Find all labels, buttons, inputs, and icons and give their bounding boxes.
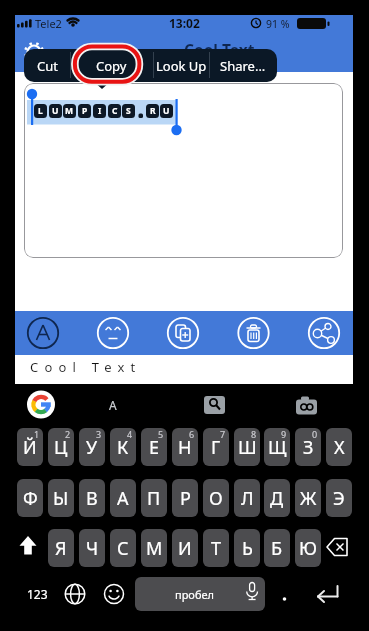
- staticText: Л: [241, 486, 254, 511]
- button[interactable]: [15, 529, 45, 566]
- staticText: С: [117, 536, 129, 561]
- staticText: R: [150, 105, 156, 117]
- staticText: 8: [251, 428, 257, 440]
- staticText: Look Up: [156, 57, 207, 75]
- staticText: U: [52, 105, 59, 117]
- button[interactable]: О: [203, 479, 229, 517]
- staticText: Т: [211, 536, 222, 561]
- staticText: О: [209, 486, 223, 511]
- button[interactable]: [24, 83, 343, 258]
- button[interactable]: Cut: [24, 49, 70, 82]
- staticText: А: [117, 486, 129, 511]
- staticText: 4: [127, 428, 133, 440]
- button[interactable]: [308, 577, 348, 611]
- staticText: Ж: [300, 486, 317, 511]
- button[interactable]: Р: [172, 479, 198, 517]
- staticText: Share...: [220, 57, 266, 75]
- staticText: Cool Text: [184, 39, 255, 60]
- button[interactable]: Ю: [295, 529, 321, 567]
- staticText: М: [146, 536, 163, 561]
- staticText: П: [147, 486, 161, 511]
- button[interactable]: Н: [172, 428, 198, 466]
- staticText: Г: [211, 435, 221, 460]
- button[interactable]: Э: [326, 479, 352, 517]
- staticText: Ь: [242, 536, 253, 561]
- staticText: Э: [333, 486, 345, 511]
- staticText: В: [86, 486, 98, 511]
- button[interactable]: Й: [17, 428, 43, 466]
- button[interactable]: Ь: [234, 529, 260, 567]
- button[interactable]: Ф: [17, 479, 43, 517]
- button[interactable]: [323, 529, 353, 566]
- staticText: L: [38, 105, 43, 117]
- button[interactable]: К: [110, 428, 136, 466]
- staticText: К: [117, 435, 129, 460]
- staticText: 1: [34, 428, 40, 440]
- staticText: Cut: [37, 57, 58, 75]
- button[interactable]: В: [79, 479, 105, 517]
- staticText: Д: [270, 486, 284, 511]
- staticText: Copy: [96, 57, 127, 75]
- button[interactable]: [60, 577, 90, 611]
- button[interactable]: Б: [264, 529, 290, 567]
- button[interactable]: Look Up: [153, 49, 209, 82]
- button[interactable]: Д: [264, 479, 290, 517]
- button[interactable]: У: [79, 428, 105, 466]
- button[interactable]: [99, 577, 129, 611]
- staticText: S: [126, 105, 131, 117]
- button[interactable]: Я: [48, 529, 74, 567]
- staticText: P: [82, 105, 88, 117]
- staticText: C: [112, 105, 118, 117]
- staticText: Ш: [238, 435, 257, 460]
- staticText: И: [178, 536, 192, 561]
- button[interactable]: И: [172, 529, 198, 567]
- staticText: U: [163, 105, 170, 117]
- staticText: Ф: [23, 486, 38, 511]
- staticText: Ю: [299, 536, 317, 561]
- staticText: 2: [65, 428, 71, 440]
- button[interactable]: [270, 577, 298, 611]
- button[interactable]: Ч: [79, 529, 105, 567]
- staticText: Ч: [86, 536, 99, 561]
- button[interactable]: П: [141, 479, 167, 517]
- staticText: Й: [23, 435, 37, 460]
- button[interactable]: пробел: [135, 577, 265, 611]
- button[interactable]: Ж: [295, 479, 321, 517]
- staticText: 7: [220, 428, 226, 440]
- button[interactable]: Е: [141, 428, 167, 466]
- button[interactable]: Щ: [264, 428, 290, 466]
- button[interactable]: 123: [17, 577, 57, 611]
- button[interactable]: Л: [234, 479, 260, 517]
- staticText: 91 %: [266, 17, 290, 31]
- button[interactable]: Copy: [70, 49, 153, 82]
- staticText: Е: [149, 435, 160, 460]
- staticText: 13:02: [169, 15, 200, 31]
- button[interactable]: Т: [203, 529, 229, 567]
- button[interactable]: М: [141, 529, 167, 567]
- staticText: Tele2: [35, 16, 62, 31]
- staticText: Р: [180, 486, 191, 511]
- staticText: Щ: [268, 435, 287, 460]
- staticText: M: [65, 105, 74, 117]
- staticText: Cool Text: [30, 358, 142, 376]
- button[interactable]: Ы: [48, 479, 74, 517]
- staticText: 3: [96, 428, 102, 440]
- staticText: 5: [158, 428, 164, 440]
- staticText: Ц: [54, 435, 68, 460]
- button[interactable]: А: [110, 479, 136, 517]
- button[interactable]: Х: [326, 428, 352, 466]
- button[interactable]: Ц: [48, 428, 74, 466]
- staticText: Ы: [53, 486, 69, 511]
- button[interactable]: Г: [203, 428, 229, 466]
- staticText: 0: [312, 428, 318, 440]
- staticText: З: [303, 435, 314, 460]
- staticText: 6: [189, 428, 195, 440]
- staticText: У: [86, 435, 98, 460]
- button[interactable]: Share...: [209, 49, 277, 82]
- button[interactable]: Ш: [234, 428, 260, 466]
- button[interactable]: З: [295, 428, 321, 466]
- staticText: Х: [334, 435, 345, 460]
- staticText: Н: [178, 435, 192, 460]
- button[interactable]: С: [110, 529, 136, 567]
- staticText: Б: [271, 536, 283, 561]
